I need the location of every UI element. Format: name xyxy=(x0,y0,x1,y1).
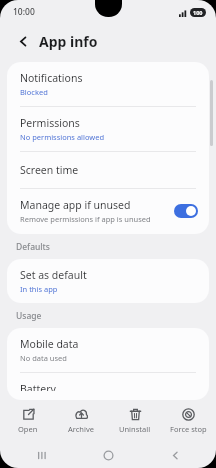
staticText: Battery xyxy=(20,382,56,391)
button[interactable]: Mobile data xyxy=(7,328,209,373)
staticText: 10:00 xyxy=(13,6,35,18)
staticText: Mobile data xyxy=(20,337,79,351)
staticText: Defaults xyxy=(16,241,51,253)
staticText: Open xyxy=(18,424,38,434)
button[interactable]: Back xyxy=(12,30,34,52)
staticText: Force stop xyxy=(170,424,207,434)
staticText: Usage xyxy=(16,310,42,322)
button[interactable]: Back xyxy=(149,442,201,468)
staticText: Remove permissions if app is unused xyxy=(20,214,151,224)
staticText: Permissions xyxy=(20,116,80,130)
button[interactable]: Force stop xyxy=(163,408,213,434)
button[interactable]: Battery xyxy=(7,373,209,400)
button[interactable]: Home xyxy=(82,442,134,468)
staticText: No permissions allowed xyxy=(20,132,105,142)
staticText: Archive xyxy=(68,424,94,434)
button[interactable]: Notifications xyxy=(7,62,209,107)
button[interactable]: Permissions xyxy=(7,107,209,152)
button[interactable]: Recents xyxy=(15,442,67,468)
button[interactable]: Archive xyxy=(56,408,106,434)
staticText: Uninstall xyxy=(119,424,151,434)
staticText: Notifications xyxy=(20,71,83,85)
button[interactable]: Screen time xyxy=(7,152,209,189)
staticText: Manage app if unused xyxy=(20,198,131,212)
staticText: Blocked xyxy=(20,87,48,97)
button[interactable]: Set as default xyxy=(7,259,209,303)
button[interactable]: Open xyxy=(3,408,53,434)
button[interactable]: Uninstall xyxy=(110,408,160,434)
staticText: Screen time xyxy=(20,163,79,177)
staticText: App info xyxy=(39,32,98,51)
staticText: 100 xyxy=(193,9,203,16)
staticText: Set as default xyxy=(20,268,87,282)
staticText: No data used xyxy=(20,353,67,363)
staticText: In this app xyxy=(20,284,58,294)
button[interactable]: Manage app if unused xyxy=(7,189,209,234)
